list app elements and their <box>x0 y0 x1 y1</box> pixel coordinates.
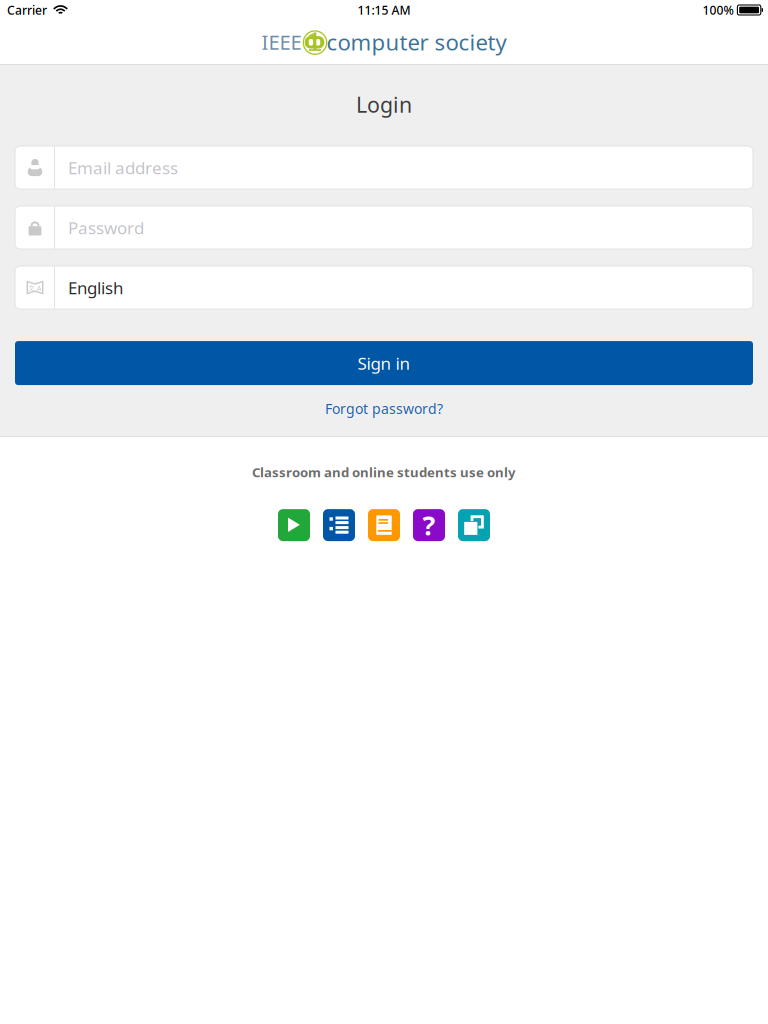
staticText: Classroom and online students use only <box>252 463 516 481</box>
button[interactable]: Sign in <box>15 341 753 385</box>
button[interactable]: Course list <box>323 509 355 541</box>
staticText: computer society <box>326 27 506 57</box>
staticText: Sign in <box>357 351 410 375</box>
staticText: IEEE <box>261 28 301 56</box>
button[interactable]: Reading <box>368 509 400 541</box>
button[interactable]: Password <box>15 206 753 249</box>
button[interactable]: Help <box>413 509 445 541</box>
button[interactable]: Play video <box>278 509 310 541</box>
staticText: Login <box>356 90 412 119</box>
button[interactable]: Email address <box>15 146 753 189</box>
staticText: Forgot password? <box>325 399 443 418</box>
staticText: 100% <box>702 2 733 18</box>
staticText: Carrier <box>7 2 47 18</box>
staticText: A <box>37 283 42 293</box>
staticText: 11:15 AM <box>357 2 410 18</box>
staticText: Email address <box>68 156 178 179</box>
button[interactable]: Screen share <box>458 509 490 541</box>
button[interactable]: 文 <box>15 266 753 309</box>
staticText: Password <box>68 216 144 239</box>
staticText: 文 <box>28 284 35 292</box>
staticText: English <box>68 276 123 299</box>
button[interactable]: Forgot password? <box>325 399 443 418</box>
staticText: ? <box>422 507 435 543</box>
